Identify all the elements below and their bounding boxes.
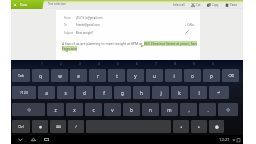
staticText: o bbox=[191, 73, 194, 79]
button[interactable]: x bbox=[66, 103, 83, 116]
staticText: 6 bbox=[136, 62, 138, 66]
button[interactable]: j bbox=[152, 86, 169, 99]
staticText: d bbox=[83, 90, 86, 96]
button[interactable]: k bbox=[171, 86, 188, 99]
button[interactable]: a bbox=[38, 86, 55, 99]
button[interactable]: b bbox=[123, 103, 140, 116]
staticText: z bbox=[54, 107, 57, 113]
button[interactable]: Ctrl bbox=[12, 120, 30, 133]
staticText: 5 bbox=[117, 62, 119, 66]
button[interactable]: n bbox=[142, 103, 159, 116]
button[interactable]: Recent apps bbox=[40, 135, 53, 144]
button[interactable]: f bbox=[95, 86, 112, 99]
staticText: l bbox=[198, 90, 200, 96]
staticText: u bbox=[153, 73, 156, 79]
staticText: Copy bbox=[212, 3, 219, 7]
staticText: ?123 bbox=[20, 90, 28, 95]
staticText: 9 bbox=[193, 62, 195, 66]
staticText: c bbox=[92, 107, 95, 113]
staticText: Paste bbox=[230, 3, 238, 7]
button[interactable]: ?123 bbox=[12, 86, 36, 99]
staticText: 1 bbox=[41, 62, 43, 66]
button[interactable]: Back bbox=[14, 135, 27, 144]
staticText: y bbox=[134, 73, 137, 79]
button[interactable]: y bbox=[127, 69, 144, 82]
button[interactable]: ● bbox=[32, 120, 48, 133]
button[interactable]: o bbox=[184, 69, 201, 82]
button[interactable]: ⬤ bbox=[209, 120, 224, 133]
staticText: p bbox=[210, 73, 213, 79]
button[interactable]: r bbox=[89, 69, 106, 82]
button[interactable]: v bbox=[104, 103, 121, 116]
button[interactable]: g bbox=[114, 86, 131, 99]
staticText: From bbox=[64, 16, 71, 20]
staticText: f bbox=[103, 90, 105, 96]
staticText: ⬤ bbox=[215, 125, 219, 129]
button[interactable]: Cut bbox=[188, 0, 204, 9]
button[interactable]: . bbox=[199, 103, 216, 116]
button[interactable]: t bbox=[108, 69, 125, 82]
button[interactable]: m bbox=[161, 103, 178, 116]
button[interactable]: ◇ bbox=[12, 103, 45, 116]
staticText: Subject bbox=[64, 31, 73, 35]
button[interactable]: Tab bbox=[12, 69, 30, 82]
staticText: t bbox=[116, 73, 118, 79]
staticText: 2 bbox=[60, 62, 62, 66]
staticText: ◇ bbox=[226, 107, 230, 112]
button[interactable]: d bbox=[76, 86, 93, 99]
staticText: Tab bbox=[18, 73, 24, 78]
staticText: 7 bbox=[155, 62, 157, 66]
staticText: r bbox=[97, 73, 99, 79]
button[interactable]: l bbox=[190, 86, 207, 99]
staticText: ◇ bbox=[27, 107, 31, 112]
button[interactable]: ▸ bbox=[191, 120, 207, 133]
button[interactable]: Home bbox=[27, 135, 40, 144]
staticText: To bbox=[64, 23, 67, 27]
staticText: + CcBcc bbox=[185, 23, 195, 27]
staticText: 0 bbox=[212, 62, 214, 66]
button[interactable]: Copy bbox=[204, 0, 222, 9]
button[interactable]: Done bbox=[11, 0, 44, 9]
button[interactable]: From bbox=[56, 14, 200, 21]
staticText: ↵ bbox=[217, 90, 221, 95]
button[interactable]: ⌨ bbox=[50, 120, 66, 133]
button[interactable]: u bbox=[146, 69, 163, 82]
button[interactable]: ◇ bbox=[218, 103, 238, 116]
staticText: Select all bbox=[173, 3, 185, 7]
staticText: A few of us are planning to meet tonight… bbox=[62, 41, 144, 46]
staticText: q bbox=[39, 73, 42, 79]
button[interactable]: i bbox=[165, 69, 182, 82]
button[interactable]: ⌫ bbox=[222, 69, 239, 82]
staticText: 3 bbox=[79, 62, 81, 66]
button[interactable]: ↵ bbox=[209, 86, 229, 99]
staticText: h bbox=[140, 90, 143, 96]
staticText: friends@gmail.com, bbox=[76, 23, 101, 27]
button[interactable]: e bbox=[70, 69, 87, 82]
button[interactable]: h bbox=[133, 86, 150, 99]
button[interactable]: Select all bbox=[170, 0, 188, 9]
staticText: Done bbox=[20, 3, 28, 7]
staticText: k bbox=[178, 90, 181, 96]
staticText: Meet tonight? bbox=[76, 31, 93, 35]
button[interactable]: z bbox=[47, 103, 64, 116]
button[interactable]: s bbox=[57, 86, 74, 99]
staticText: 4 bbox=[98, 62, 100, 66]
button[interactable]: Subject bbox=[56, 29, 200, 36]
button[interactable]: ◂ bbox=[173, 120, 189, 133]
button[interactable]: p bbox=[203, 69, 220, 82]
staticText: g bbox=[121, 90, 124, 96]
staticText: . bbox=[207, 107, 209, 113]
button[interactable]: w bbox=[51, 69, 68, 82]
button[interactable]: q bbox=[32, 69, 49, 82]
staticText: ⌨ bbox=[56, 125, 61, 129]
staticText: ● bbox=[39, 125, 42, 129]
button[interactable]: / bbox=[68, 120, 84, 133]
staticText: 12:21 bbox=[219, 137, 230, 143]
button[interactable]: c bbox=[85, 103, 102, 116]
button[interactable]: To bbox=[56, 21, 200, 28]
button[interactable]: , bbox=[180, 103, 197, 116]
button[interactable]: Paste bbox=[222, 0, 241, 9]
staticText: ⌫ bbox=[228, 73, 234, 78]
staticText: m bbox=[167, 107, 172, 113]
